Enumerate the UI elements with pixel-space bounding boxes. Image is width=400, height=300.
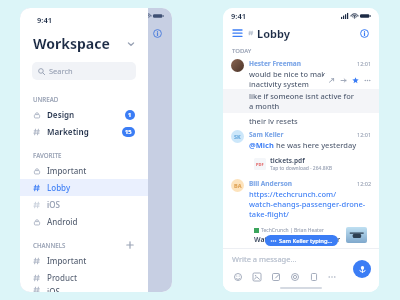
staticText: CHANNELS [33,241,66,249]
other: Expand workspace [127,40,135,48]
staticText: BA [234,182,242,189]
button[interactable]: Attach file [308,271,319,282]
staticText: Important [47,255,87,266]
staticText: 1 [128,111,132,119]
staticText: iOS [47,199,60,210]
button[interactable]: More options [364,77,371,84]
button[interactable]: Android [20,213,148,230]
staticText: Write a message... [232,254,297,264]
staticText: Marketing [47,126,89,137]
staticText: UNREAD [33,95,59,103]
button[interactable]: Add channel [125,240,135,250]
button[interactable]: Workspace [33,34,135,53]
staticText: Android [47,216,78,227]
staticText: Lobby [54,26,87,41]
staticText: 12:02 [357,180,372,187]
button[interactable]: Important [20,162,148,179]
staticText: TODAY [232,47,252,55]
button[interactable]: Search [32,62,136,80]
staticText: iOS [47,286,60,292]
button[interactable]: More [327,272,336,281]
button[interactable]: Channel info [151,27,164,40]
staticText: Workspace [33,34,110,53]
button[interactable]: Menu [231,27,243,39]
staticText: 12:01 [357,131,372,138]
staticText: Product [47,272,77,283]
staticText: SK [234,133,241,140]
staticText: Hester Freeman [249,59,301,68]
staticText: Lobby [257,26,290,41]
staticText: 9:41 [28,11,43,21]
staticText: take-flight/ [249,209,289,219]
staticText: watch-ehangs-passenger-drone- [249,199,366,209]
button[interactable]: Product [20,269,148,286]
button[interactable]: TechCrunch | Brian Heater [249,222,372,248]
staticText: Lobby [47,182,71,193]
button[interactable]: Marketing [20,123,148,140]
staticText: 15 [125,128,132,136]
button[interactable]: Edit [270,271,281,282]
staticText: their lv resets [249,116,298,126]
staticText: Important [47,165,87,176]
staticText: 12:01 [357,60,372,67]
button[interactable]: Important [20,252,148,269]
button[interactable]: Star [352,77,359,84]
staticText: https://techcrunch.com/2018/02/05/ [249,189,372,199]
button[interactable]: PDF [249,153,372,175]
staticText: FAVORITE [33,151,62,159]
button[interactable]: Attach image [251,271,262,282]
staticText: inactivity system [249,79,309,89]
staticText: TechCrunch | Brian Heater [261,227,324,234]
button[interactable]: React [328,77,335,84]
button[interactable]: Channel info [358,27,371,40]
staticText: tickets.pdf [270,156,305,165]
staticText: 9:41 [37,15,52,25]
staticText: Design [47,109,75,120]
button[interactable]: Design [20,106,148,123]
staticText: Search [49,66,73,76]
button[interactable]: Lobby [20,179,148,196]
button[interactable]: iOS [20,286,148,292]
staticText: Tap to download · 264.8KB [270,165,332,172]
staticText: Watch Ehang's passenger [254,235,341,243]
staticText: Sam Keller typing... [279,237,333,245]
button[interactable]: Forward [340,77,347,84]
staticText: PDF [256,162,264,167]
button[interactable]: Mention [289,271,300,282]
button[interactable]: Voice message [353,260,371,278]
staticText: @Mich [249,140,274,150]
button[interactable]: iOS [20,196,148,213]
staticText: like if someone isnt active for [249,91,355,101]
staticText: would be nice to make some [249,69,352,79]
staticText: Bill Anderson [249,179,292,188]
staticText: Sam Keller [249,130,284,139]
staticText: a month [249,101,280,111]
button[interactable]: Emoji [232,271,243,282]
staticText: 9:41 [231,11,246,21]
staticText: he was here yesterday [274,140,357,150]
